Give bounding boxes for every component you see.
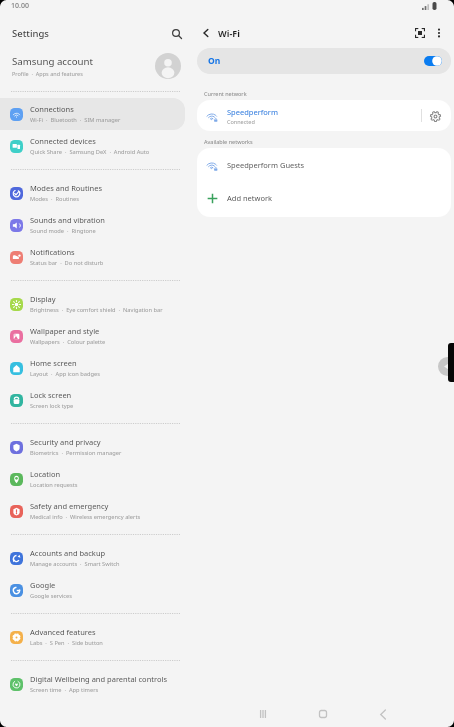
button[interactable]: Accounts and backup xyxy=(0,542,185,574)
staticText: Wallpaper and style xyxy=(30,326,100,336)
staticText: Screen time · App timers xyxy=(30,686,99,694)
button[interactable]: Scan QR code xyxy=(412,25,428,41)
button[interactable]: Google xyxy=(0,574,185,606)
staticText: Connections xyxy=(30,104,74,114)
button[interactable]: Home xyxy=(293,701,353,727)
staticText: Accounts and backup xyxy=(30,548,106,558)
button[interactable]: Advanced features xyxy=(0,621,185,653)
staticText: Labs · S Pen · Side button xyxy=(30,639,103,647)
staticText: Speedperform Guests xyxy=(227,160,305,170)
button[interactable]: Connections xyxy=(0,98,185,130)
staticText: Medical info · Wireless emergency alerts xyxy=(30,513,141,521)
button[interactable]: Add network xyxy=(197,182,451,214)
button[interactable]: Network settings xyxy=(428,109,442,123)
button[interactable]: Search xyxy=(170,27,184,41)
staticText: Google services xyxy=(30,592,72,600)
staticText: Location xyxy=(30,469,61,479)
staticText: Home screen xyxy=(30,358,77,368)
staticText: Google xyxy=(30,580,56,590)
staticText: Modes and Routines xyxy=(30,183,103,193)
staticText: Status bar · Do not disturb xyxy=(30,259,104,267)
staticText: Current network xyxy=(204,90,247,97)
staticText: Manage accounts · Smart Switch xyxy=(30,560,120,568)
staticText: Digital Wellbeing and parental controls xyxy=(30,674,167,684)
button[interactable]: More options xyxy=(428,22,449,43)
staticText: Brightness · Eye comfort shield · Naviga… xyxy=(30,306,163,314)
staticText: Add network xyxy=(227,193,273,203)
button[interactable]: Profile xyxy=(155,53,181,79)
staticText: Wallpapers · Colour palette xyxy=(30,338,106,346)
button[interactable]: Security and privacy xyxy=(0,431,185,463)
button[interactable]: Display xyxy=(0,288,185,320)
staticText: Settings xyxy=(12,27,49,40)
button[interactable]: Speedperform xyxy=(197,100,451,131)
staticText: Layout · App icon badges xyxy=(30,370,100,378)
staticText: On xyxy=(208,55,221,67)
button[interactable]: Lock screen xyxy=(0,384,185,416)
staticText: Modes · Routines xyxy=(30,195,79,203)
button[interactable]: On xyxy=(197,48,451,74)
staticText: Speedperform xyxy=(227,107,278,117)
staticText: Available networks xyxy=(204,138,253,145)
staticText: Location requests xyxy=(30,481,78,489)
staticText: Display xyxy=(30,294,56,304)
button[interactable]: Notifications xyxy=(0,241,185,273)
button[interactable]: Safety and emergency xyxy=(0,495,185,527)
button[interactable]: Wallpaper and style xyxy=(0,320,185,352)
staticText: Safety and emergency xyxy=(30,501,109,511)
staticText: Advanced features xyxy=(30,627,96,637)
staticText: Connected xyxy=(227,118,255,125)
staticText: Security and privacy xyxy=(30,437,101,447)
staticText: Screen lock type xyxy=(30,402,74,410)
staticText: Sounds and vibration xyxy=(30,215,105,225)
staticText: Profile · Apps and features xyxy=(12,70,83,77)
button[interactable]: Modes and Routines xyxy=(0,177,185,209)
button[interactable]: Back xyxy=(196,23,216,43)
button[interactable]: Back xyxy=(353,701,413,727)
staticText: Biometrics · Permission manager xyxy=(30,449,122,457)
button[interactable]: Recents xyxy=(233,701,293,727)
staticText: Lock screen xyxy=(30,390,72,400)
button[interactable]: Digital Wellbeing and parental controls xyxy=(0,668,185,700)
button[interactable]: Home screen xyxy=(0,352,185,384)
button[interactable]: Connected devices xyxy=(0,130,185,162)
staticText: Quick Share · Samsung DeX · Android Auto xyxy=(30,148,150,156)
staticText: Samsung account xyxy=(12,55,93,68)
button[interactable]: Edge panel xyxy=(448,343,454,382)
staticText: Sound mode · Ringtone xyxy=(30,227,96,235)
staticText: Notifications xyxy=(30,247,75,257)
button[interactable]: Sounds and vibration xyxy=(0,209,185,241)
staticText: Connected devices xyxy=(30,136,96,146)
staticText: Wi-Fi xyxy=(218,27,240,39)
button[interactable]: Location xyxy=(0,463,185,495)
button[interactable]: Speedperform Guests xyxy=(197,148,451,182)
button[interactable]: Samsung account xyxy=(0,46,191,85)
staticText: Wi-Fi · Bluetooth · SIM manager xyxy=(30,116,121,124)
staticText: 10.00 xyxy=(11,1,29,11)
